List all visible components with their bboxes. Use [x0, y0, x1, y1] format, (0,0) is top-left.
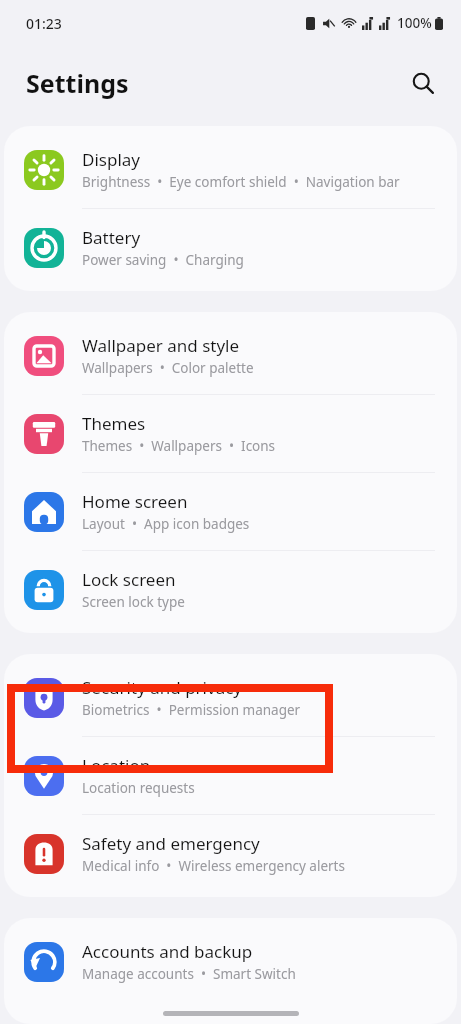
staticText: Accounts and backup [82, 940, 253, 963]
staticText: Lock screen [82, 568, 176, 591]
staticText: Wallpaper and style [82, 334, 240, 357]
staticText: Home screen [82, 490, 188, 513]
staticText: Security and privacy [82, 676, 243, 699]
staticText: 100% [397, 14, 432, 32]
button[interactable]: Themes [4, 395, 457, 472]
staticText: 01:23 [26, 14, 62, 33]
staticText: Themes [82, 412, 146, 435]
button[interactable]: Search settings [403, 63, 443, 103]
staticText: Themes • Wallpapers • Icons [82, 437, 276, 455]
button[interactable]: Display [4, 131, 457, 208]
button[interactable]: Wallpaper and style [4, 317, 457, 394]
staticText: Brightness • Eye comfort shield • Naviga… [82, 173, 400, 191]
button[interactable]: Lock screen [4, 551, 457, 628]
staticText: Screen lock type [82, 593, 185, 611]
staticText: Location [82, 754, 151, 777]
staticText: Settings [26, 66, 129, 100]
staticText: Power saving • Charging [82, 251, 244, 269]
button[interactable]: Accounts and backup [4, 923, 457, 1000]
staticText: Biometrics • Permission manager [82, 701, 301, 719]
button[interactable]: Safety and emergency [4, 815, 457, 892]
button[interactable]: Security and privacy [4, 659, 457, 736]
staticText: Battery [82, 226, 141, 249]
staticText: Location requests [82, 779, 195, 797]
staticText: Manage accounts • Smart Switch [82, 965, 296, 983]
staticText: Layout • App icon badges [82, 515, 250, 533]
staticText: Safety and emergency [82, 832, 260, 855]
button[interactable]: Battery [4, 209, 457, 286]
staticText: Wallpapers • Color palette [82, 359, 254, 377]
staticText: Medical info • Wireless emergency alerts [82, 857, 345, 875]
button[interactable]: Home screen [4, 473, 457, 550]
button[interactable]: Location [4, 737, 457, 814]
staticText: Display [82, 148, 140, 171]
